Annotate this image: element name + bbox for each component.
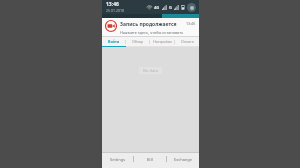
staticText: Обзор (132, 39, 143, 44)
staticText: 13:46 (186, 21, 196, 26)
staticText: Settings (110, 157, 126, 162)
staticText: Оплата (181, 39, 194, 44)
staticText: Нажмите здесь, чтобы остановить запи.. (120, 30, 186, 35)
button[interactable]: Обзор (126, 37, 149, 46)
staticText: Войти (108, 39, 120, 44)
button[interactable]: Настройки (150, 37, 174, 46)
staticText: 25.01.2018 (106, 8, 124, 13)
staticText: Настройки (153, 39, 172, 44)
button[interactable]: Account (187, 3, 196, 12)
button[interactable]: Запись продолжается (102, 18, 199, 37)
staticText: G (169, 5, 172, 10)
staticText: No data (143, 68, 158, 73)
button[interactable]: Оплата (175, 37, 199, 46)
staticText: 13:46 (106, 1, 119, 8)
staticText: Exchange (174, 157, 193, 162)
button[interactable]: Bill (134, 153, 166, 165)
staticText: Запись продолжается (120, 21, 177, 28)
button[interactable]: Exchange (167, 153, 199, 165)
staticText: Bill (147, 157, 153, 162)
button[interactable]: Войти (102, 37, 125, 46)
button[interactable]: Settings (102, 153, 133, 165)
staticText: 4G (154, 5, 160, 10)
